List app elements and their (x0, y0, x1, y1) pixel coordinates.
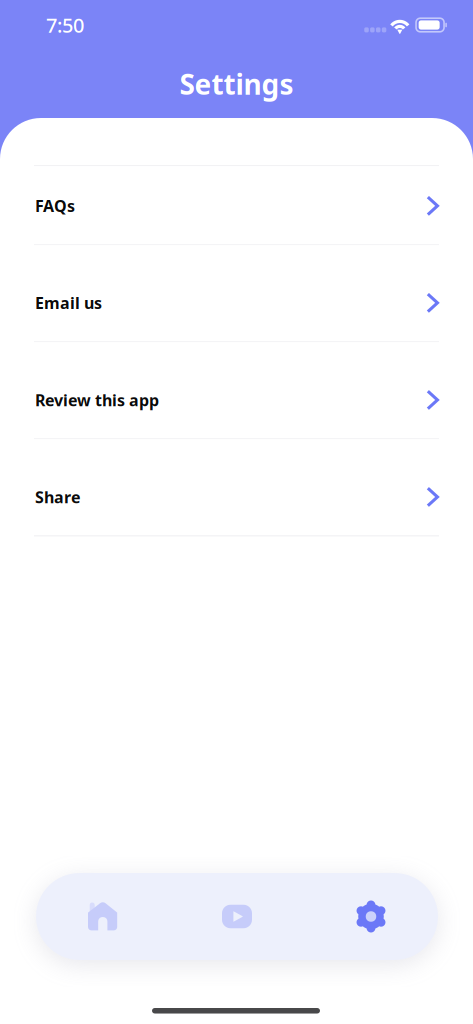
staticText: 7:50 (46, 12, 84, 38)
button[interactable]: Videos (170, 873, 304, 960)
button[interactable]: Share (0, 439, 473, 536)
staticText: Review this app (35, 389, 159, 410)
button[interactable]: Email us (0, 245, 473, 342)
button[interactable]: Settings (304, 873, 438, 960)
button[interactable]: Home (36, 873, 170, 960)
staticText: Share (35, 486, 81, 507)
button[interactable]: FAQs (0, 166, 473, 245)
button[interactable]: Review this app (0, 342, 473, 439)
staticText: Email us (35, 292, 102, 313)
staticText: Settings (179, 65, 293, 103)
staticText: FAQs (35, 195, 75, 216)
